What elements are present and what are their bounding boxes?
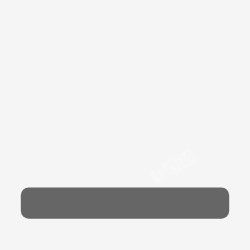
button[interactable]: Action button: [21, 187, 229, 218]
